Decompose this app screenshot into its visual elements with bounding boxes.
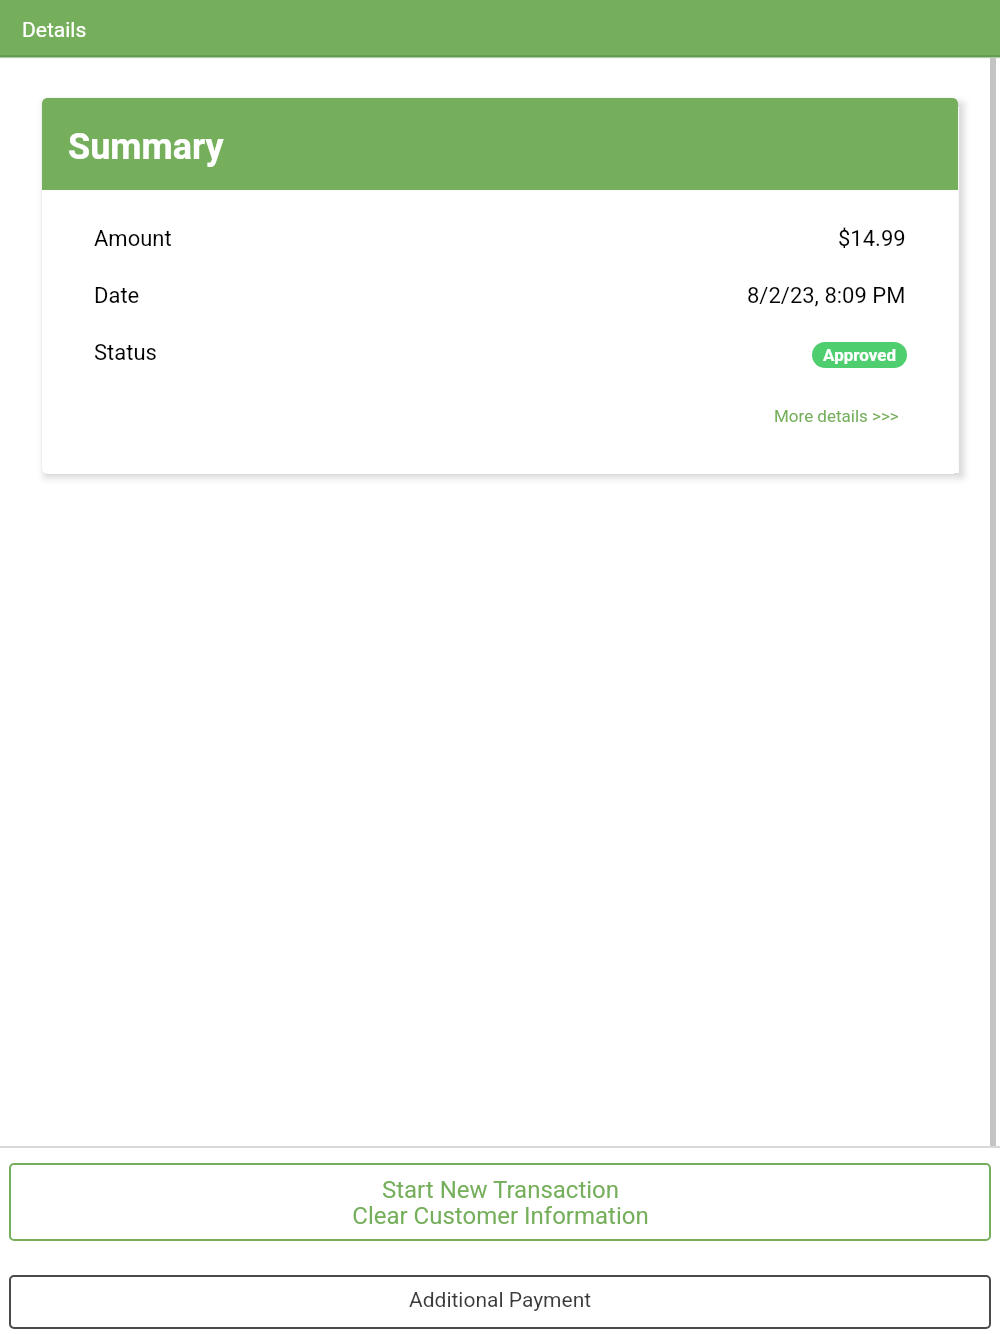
staticText: Status bbox=[94, 340, 157, 366]
staticText: Details bbox=[22, 18, 87, 43]
staticText: Amount bbox=[94, 226, 172, 252]
staticText: $14.99 bbox=[838, 226, 906, 252]
button[interactable]: More details >>> bbox=[774, 406, 899, 426]
staticText: Date bbox=[94, 283, 140, 309]
button[interactable]: Additional Payment bbox=[9, 1275, 991, 1329]
button[interactable]: Start New Transaction Clear Customer Inf… bbox=[9, 1163, 991, 1241]
staticText: Approved bbox=[823, 345, 896, 365]
staticText: Additional Payment bbox=[409, 1288, 592, 1313]
staticText: 8/2/23, 8:09 PM bbox=[747, 283, 906, 309]
staticText: Start New Transaction Clear Customer Inf… bbox=[352, 1176, 649, 1230]
staticText: Summary bbox=[68, 126, 224, 168]
